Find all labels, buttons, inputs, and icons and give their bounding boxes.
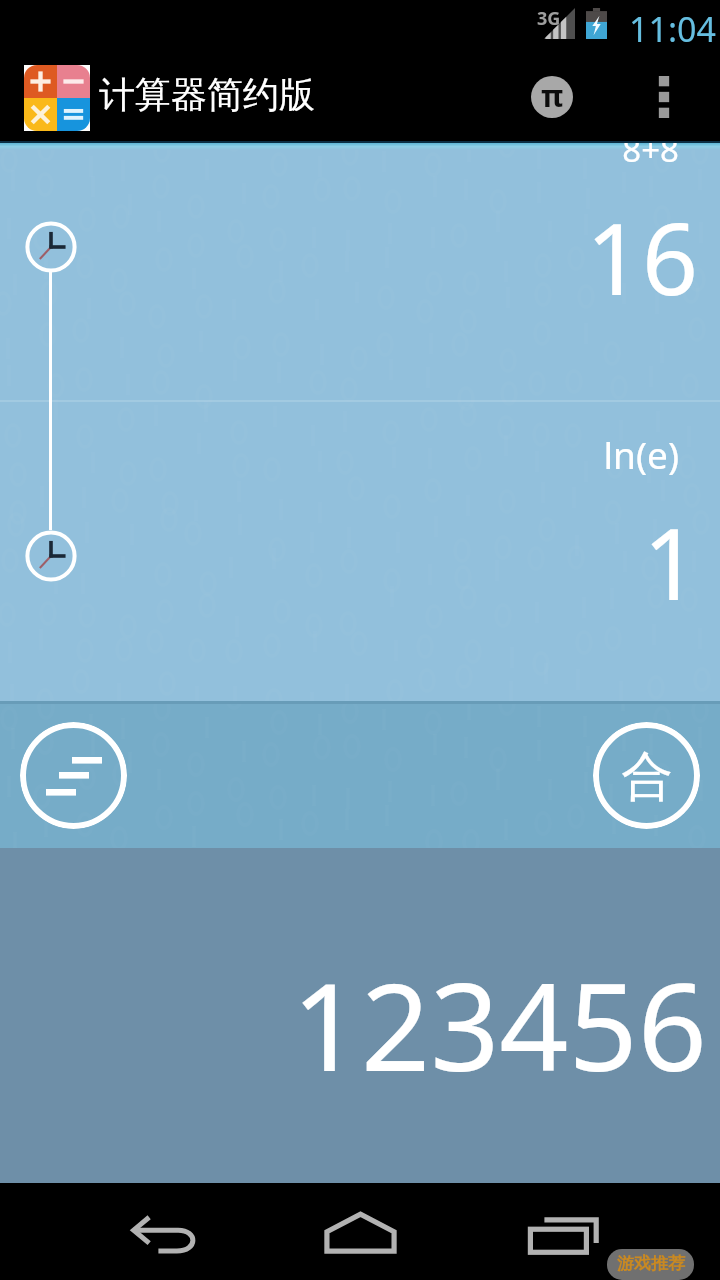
staticText: 合 (621, 744, 673, 810)
button[interactable]: Home (305, 1184, 415, 1280)
staticText: π (541, 76, 564, 116)
staticText: 123456 (0, 942, 707, 1107)
staticText: 计算器简约版 (99, 72, 315, 117)
button[interactable]: History (20, 722, 127, 829)
button[interactable]: More options (624, 50, 704, 143)
staticText: ln(e) (0, 429, 679, 479)
button[interactable]: 计算器简约版 (8, 50, 338, 143)
button[interactable]: Combine (593, 722, 700, 829)
staticText: 16 (0, 190, 698, 323)
button[interactable]: Recent apps (509, 1186, 619, 1280)
staticText: 游戏推荐 (617, 1253, 685, 1274)
staticText: 8+8 (0, 143, 679, 172)
staticText: 3G (537, 6, 561, 31)
staticText: 11:04 (629, 6, 716, 52)
button[interactable]: Back (110, 1185, 220, 1280)
staticText: 1 (0, 495, 699, 628)
button[interactable]: Pi constant (506, 50, 598, 143)
